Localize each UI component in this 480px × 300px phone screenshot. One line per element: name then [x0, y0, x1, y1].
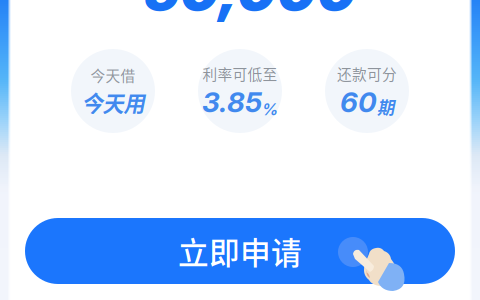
- staticText: 50,000: [143, 0, 357, 24]
- staticText: 今天借: [90, 64, 135, 86]
- staticText: 还款可分: [337, 63, 397, 84]
- staticText: 期: [377, 94, 394, 119]
- staticText: 利率可低至: [202, 63, 277, 84]
- staticText: 3.85: [202, 85, 262, 119]
- button[interactable]: 立即申请: [25, 218, 455, 284]
- staticText: 今天用: [81, 87, 144, 118]
- staticText: 立即申请: [178, 229, 302, 273]
- staticText: %: [262, 100, 278, 119]
- staticText: 60: [340, 85, 377, 119]
